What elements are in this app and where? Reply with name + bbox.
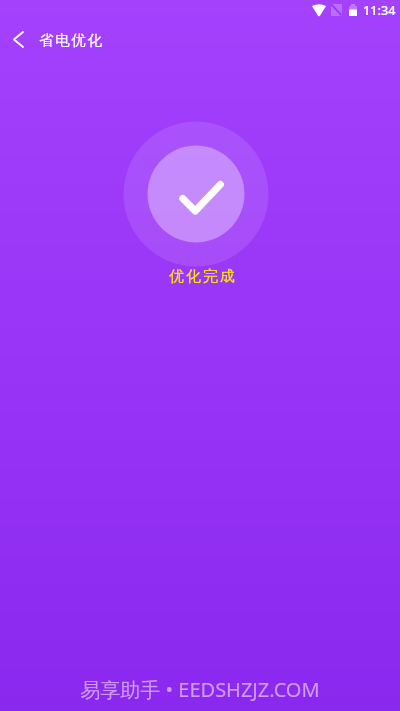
other: No mobile signal bbox=[331, 4, 342, 16]
other: Battery bbox=[349, 4, 357, 16]
other: Wi-Fi bbox=[311, 4, 327, 16]
staticText: 易享助手 • EEDSHZJZ.COM bbox=[0, 676, 400, 703]
button[interactable]: Back bbox=[0, 21, 36, 57]
staticText: 11:34 bbox=[363, 1, 396, 18]
staticText: 省电优化 bbox=[39, 31, 104, 49]
staticText: 优化完成 bbox=[3, 267, 400, 286]
other: Optimization complete bbox=[121, 119, 271, 269]
